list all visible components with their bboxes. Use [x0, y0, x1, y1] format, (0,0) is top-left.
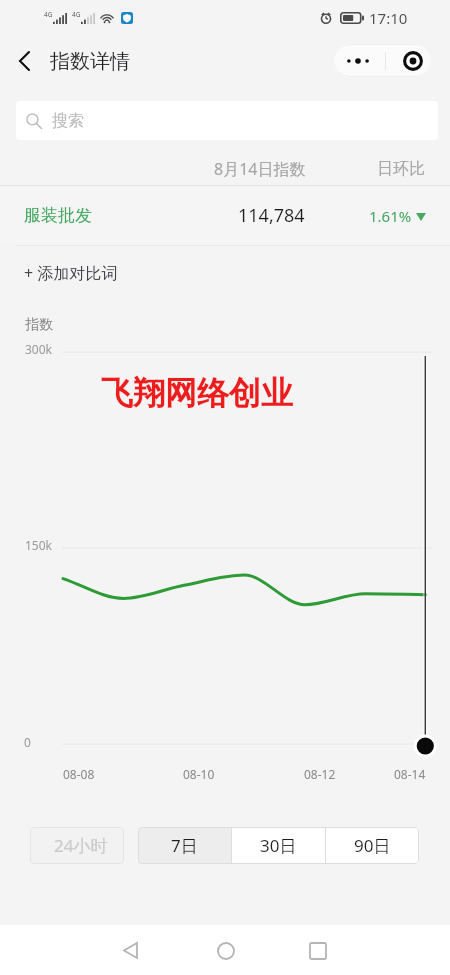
staticText: 飞翔网络创业	[101, 373, 293, 413]
staticText: 日环比	[377, 159, 425, 179]
button[interactable]: 7日	[138, 827, 231, 864]
staticText: 08-14	[394, 766, 426, 782]
button[interactable]: Recent apps	[295, 928, 340, 973]
button[interactable]: 搜索	[16, 101, 438, 140]
staticText: 08-10	[183, 766, 215, 782]
staticText: 300k	[25, 341, 53, 357]
staticText: 8月14日指数	[214, 158, 306, 180]
staticText: 1.61%	[369, 206, 412, 226]
staticText: 指数详情	[50, 49, 130, 74]
button[interactable]: Close mini program	[390, 44, 432, 77]
staticText: 150k	[25, 537, 53, 553]
button[interactable]: Home	[203, 928, 248, 973]
staticText: 24小时	[54, 834, 108, 857]
staticText: 7日	[171, 834, 198, 857]
staticText: + 添加对比词	[24, 262, 118, 284]
button[interactable]: 30日	[232, 827, 325, 864]
staticText: 0	[24, 734, 31, 750]
staticText: 搜索	[52, 111, 84, 131]
staticText: 08-12	[304, 766, 336, 782]
staticText: 服装批发	[24, 205, 92, 226]
button[interactable]: + 添加对比词	[0, 246, 450, 300]
staticText: 90日	[354, 834, 391, 857]
staticText: 4G	[72, 10, 81, 19]
staticText: 08-08	[63, 766, 95, 782]
button[interactable]: Back	[108, 928, 153, 973]
button[interactable]: 90日	[326, 827, 419, 864]
staticText: 4G	[44, 10, 53, 19]
button[interactable]: More options	[333, 44, 385, 77]
button[interactable]: 24小时	[30, 827, 124, 864]
staticText: 30日	[260, 834, 297, 857]
staticText: 17:10	[369, 8, 408, 28]
staticText: 指数	[25, 316, 53, 334]
button[interactable]: Back	[4, 41, 44, 81]
staticText: 114,784	[238, 203, 305, 228]
button[interactable]: 服装批发	[0, 186, 450, 245]
